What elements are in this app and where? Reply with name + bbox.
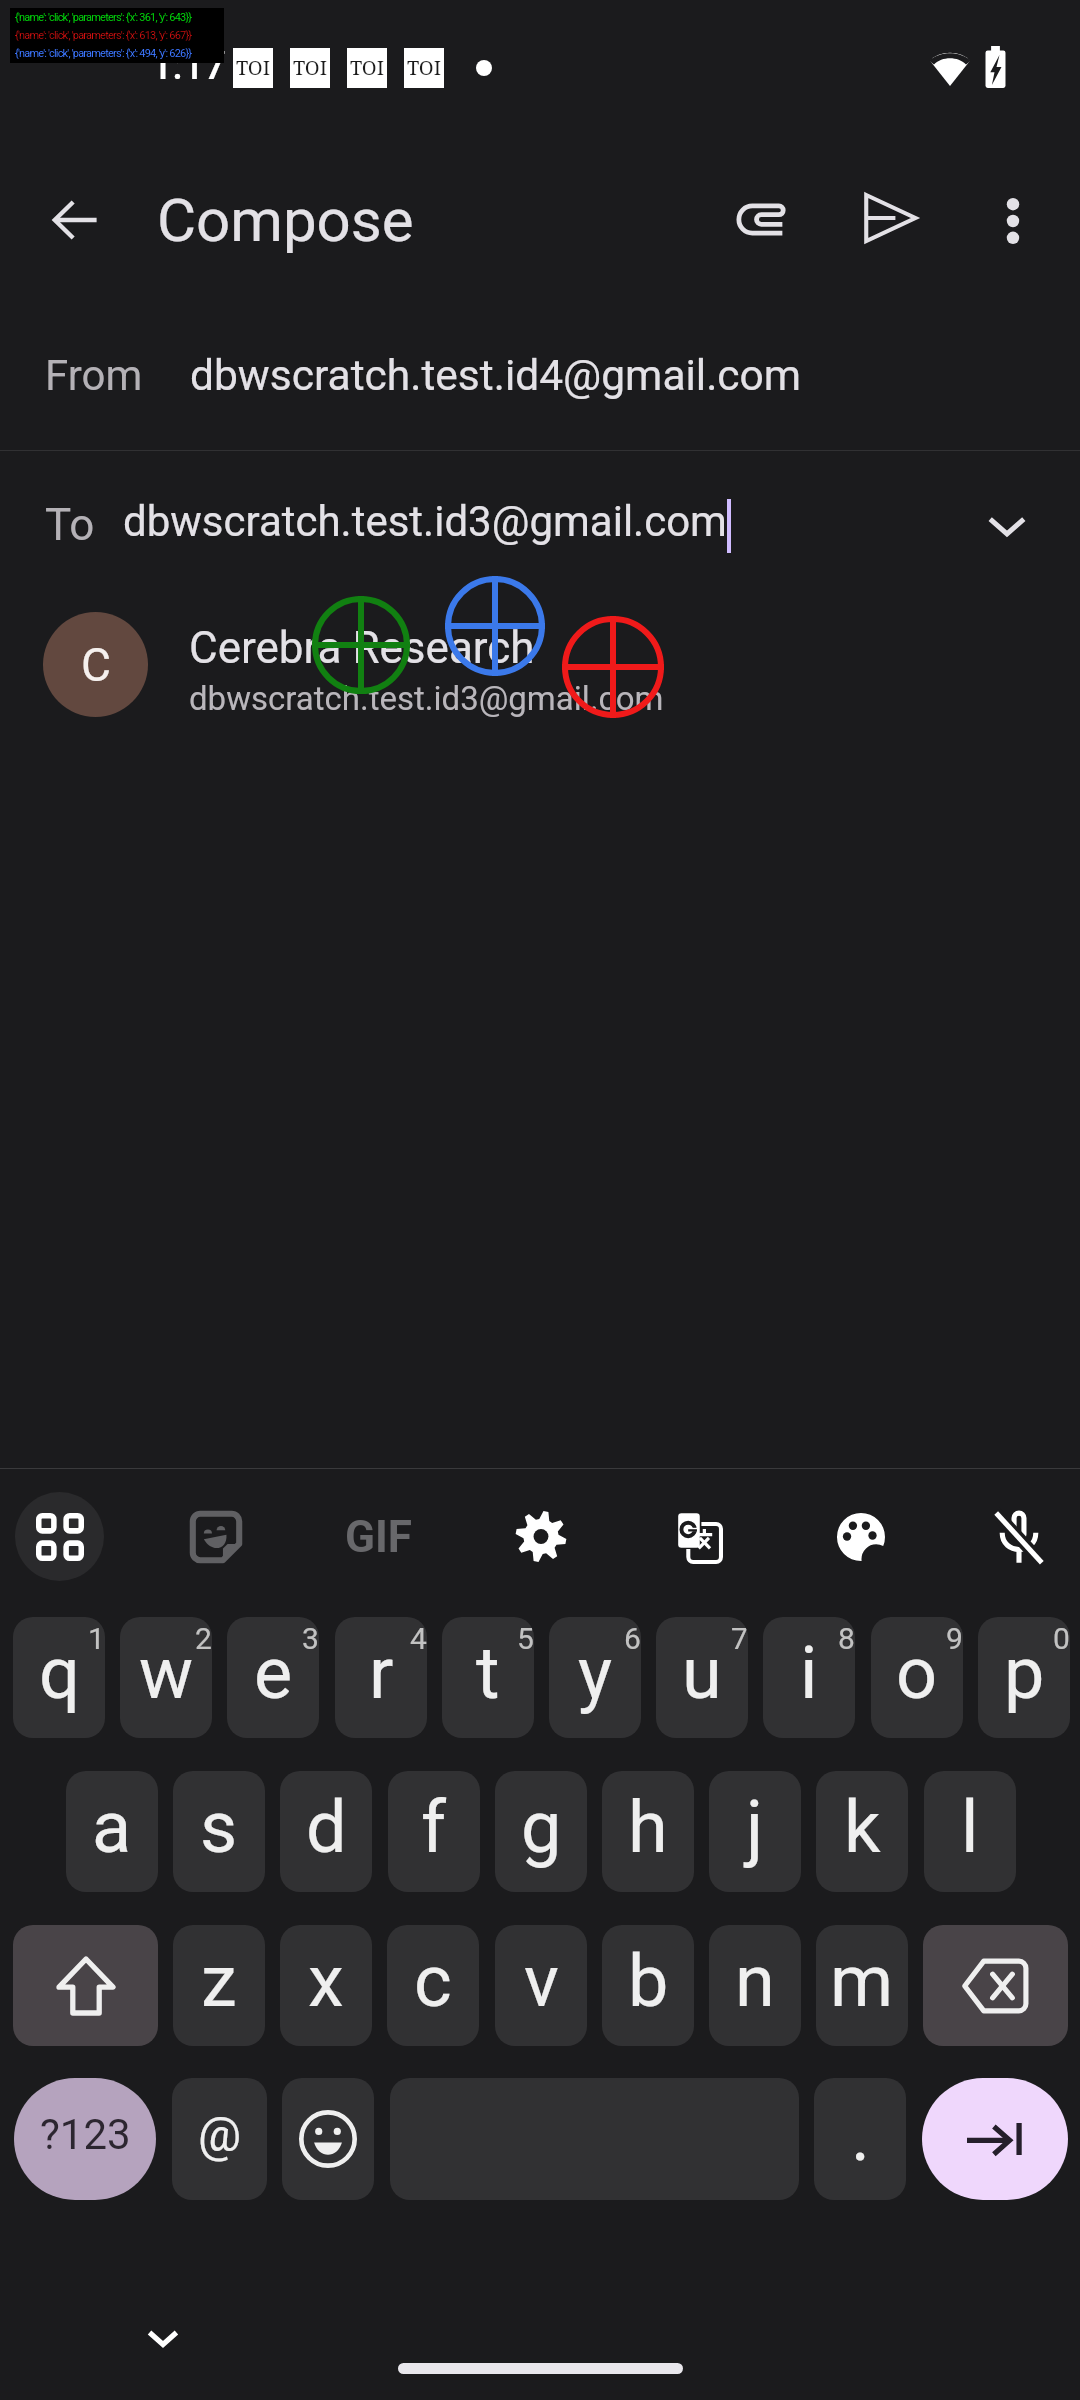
staticText: p — [1004, 1631, 1045, 1715]
staticText: n — [735, 1939, 775, 2023]
button[interactable]: Theme — [816, 1492, 905, 1581]
staticText: {'name': 'click', 'parameters': {'x': 49… — [15, 47, 192, 60]
button[interactable]: Expand recipients — [967, 486, 1047, 566]
button[interactable]: i — [763, 1617, 855, 1738]
staticText: C — [81, 638, 111, 692]
staticText: 7 — [731, 1621, 748, 1656]
staticText: o — [896, 1631, 938, 1715]
staticText: ?123 — [40, 2110, 131, 2159]
staticText: dbwscratch.test.id4@gmail.com — [190, 351, 802, 401]
button[interactable]: e — [227, 1617, 319, 1738]
button[interactable]: C — [0, 601, 1080, 751]
button[interactable]: l — [924, 1771, 1016, 1892]
staticText: a — [92, 1785, 132, 1869]
staticText: l — [961, 1785, 979, 1869]
staticText: k — [844, 1785, 881, 1869]
staticText: dbwscratch.test.id3@gmail.com — [123, 497, 727, 546]
staticText: TOI — [293, 54, 328, 81]
button[interactable]: d — [280, 1771, 372, 1892]
staticText: h — [628, 1785, 668, 1869]
staticText: Compose — [157, 185, 414, 255]
button[interactable]: Voice input disabled — [974, 1492, 1063, 1581]
staticText: 9 — [946, 1621, 963, 1656]
staticText: TOI — [350, 54, 385, 81]
button[interactable]: Hide keyboard — [130, 2305, 196, 2371]
button[interactable]: Emoji — [282, 2078, 374, 2200]
staticText: dbwscratch.test.id3@gmail.com — [189, 679, 664, 718]
button[interactable]: Stickers — [171, 1492, 260, 1581]
staticText: @ — [198, 2106, 242, 2162]
staticText: d — [306, 1785, 347, 1869]
button[interactable]: y — [549, 1617, 641, 1738]
staticText: 5 — [517, 1621, 534, 1656]
staticText: r — [369, 1631, 394, 1715]
staticText: To — [45, 499, 95, 551]
button[interactable]: f — [388, 1771, 480, 1892]
button[interactable]: Delete — [923, 1925, 1068, 2046]
staticText: v — [524, 1939, 559, 2023]
staticText: 1 — [88, 1621, 105, 1656]
button[interactable]: a — [66, 1771, 158, 1892]
button[interactable]: Navigate up — [27, 172, 123, 268]
button[interactable]: p — [978, 1617, 1070, 1738]
button[interactable]: q — [13, 1617, 105, 1738]
button[interactable]: g — [495, 1771, 587, 1892]
button[interactable]: j — [709, 1771, 801, 1892]
button[interactable]: w — [120, 1617, 212, 1738]
staticText: From — [45, 351, 143, 400]
staticText: e — [254, 1631, 293, 1715]
button[interactable]: b — [602, 1925, 694, 2046]
button[interactable]: m — [816, 1925, 908, 2046]
staticText: {'name': 'click', 'parameters': {'x': 61… — [15, 29, 192, 42]
button[interactable]: k — [816, 1771, 908, 1892]
staticText: g — [521, 1785, 562, 1869]
button[interactable]: Attach file — [716, 171, 812, 267]
button[interactable]: o — [871, 1617, 963, 1738]
button[interactable]: Send — [842, 170, 938, 266]
staticText: w — [139, 1631, 194, 1715]
button[interactable]: Shift — [13, 1925, 158, 2046]
button[interactable]: h — [602, 1771, 694, 1892]
staticText: GIF — [345, 1511, 413, 1563]
staticText: 4 — [410, 1621, 427, 1656]
button[interactable]: Settings — [496, 1492, 585, 1581]
staticText: 2 — [195, 1621, 212, 1656]
button[interactable]: From — [0, 300, 1080, 450]
staticText: 3 — [302, 1621, 319, 1656]
button[interactable]: s — [173, 1771, 265, 1892]
staticText: t — [476, 1631, 500, 1715]
staticText: i — [800, 1631, 818, 1715]
staticText: b — [628, 1939, 669, 2023]
button[interactable]: u — [656, 1617, 748, 1738]
button[interactable]: More options — [965, 173, 1061, 269]
staticText: 6 — [624, 1621, 641, 1656]
staticText: j — [746, 1785, 764, 1869]
button[interactable]: GIF — [334, 1492, 423, 1581]
staticText: 0 — [1053, 1621, 1070, 1656]
staticText: f — [421, 1785, 447, 1869]
button[interactable]: t — [442, 1617, 534, 1738]
staticText: TOI — [407, 54, 442, 81]
button[interactable]: Translate — [651, 1492, 740, 1581]
staticText: c — [414, 1939, 452, 2023]
button[interactable]: Enter — [922, 2078, 1068, 2200]
button[interactable]: @ — [172, 2078, 267, 2200]
staticText: 1:17 — [151, 44, 226, 89]
staticText: Cerebra Research — [189, 622, 535, 674]
button[interactable]: Keyboard toolbar — [15, 1492, 104, 1581]
staticText: x — [308, 1939, 344, 2023]
staticText: 8 — [838, 1621, 855, 1656]
button[interactable]: Period — [814, 2078, 906, 2200]
button[interactable]: z — [173, 1925, 265, 2046]
button[interactable]: Symbols — [14, 2078, 156, 2200]
button[interactable]: To — [0, 451, 1080, 601]
button[interactable]: v — [495, 1925, 587, 2046]
staticText: q — [39, 1631, 80, 1715]
button[interactable]: r — [335, 1617, 427, 1738]
button[interactable]: x — [280, 1925, 372, 2046]
button[interactable]: c — [387, 1925, 479, 2046]
button[interactable]: n — [709, 1925, 801, 2046]
staticText: u — [682, 1631, 722, 1715]
staticText: s — [200, 1785, 238, 1869]
